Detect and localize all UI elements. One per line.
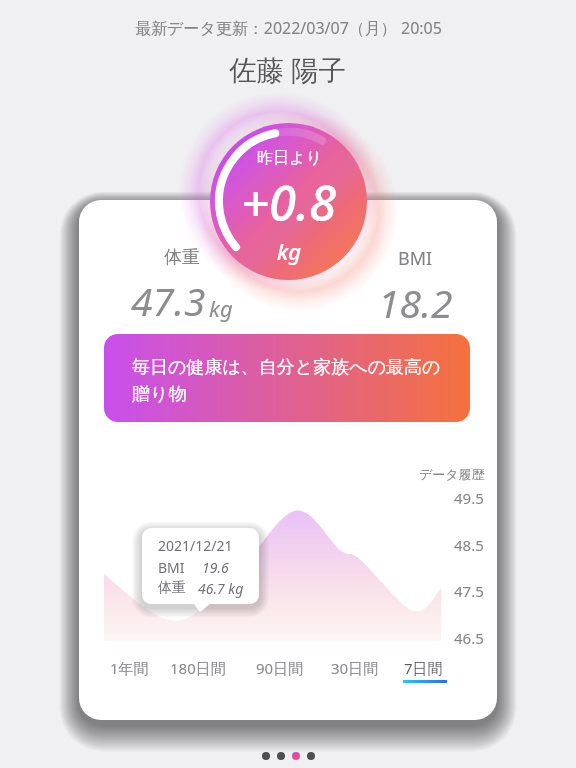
staticText: 佐藤 陽子 [229,51,347,89]
staticText: 180日間 [170,658,226,678]
staticText: 18.2 [378,276,453,329]
button[interactable]: 30日間 [324,652,386,678]
button[interactable]: 昨日より [210,123,367,280]
staticText: 最新データ更新：2022/03/07（月） 20:05 [135,17,442,39]
staticText: 30日間 [331,658,379,678]
staticText: 体重 [164,246,200,269]
button[interactable]: 1年間 [102,652,156,678]
button[interactable]: 180日間 [163,652,233,678]
staticText: 体重 [158,579,186,597]
button[interactable] [277,752,285,760]
staticText: 毎日の健康は、自分と家族への最高の贈り物 [132,356,444,406]
staticText: 46.7 kg [198,579,244,598]
button[interactable]: 7日間 [396,652,450,683]
button[interactable] [307,752,315,760]
staticText: 7日間 [404,658,443,678]
staticText: 昨日より [257,148,322,168]
staticText: データ履歴 [419,466,485,482]
button[interactable] [262,752,270,760]
staticText: 48.5 [454,535,484,555]
staticText: BMI [398,246,433,271]
button[interactable]: 毎日の健康は、自分と家族への最高の贈り物 [104,334,470,422]
staticText: 47.5 [454,581,484,601]
staticText: BMI [158,558,185,577]
staticText: 46.5 [454,628,484,648]
staticText: 2021/12/21 [158,536,233,555]
staticText: 1年間 [110,658,149,678]
staticText: +0.8 [241,169,337,236]
staticText: 49.5 [454,488,484,508]
button[interactable] [292,752,300,760]
staticText: 19.6 [202,558,229,577]
staticText: 90日間 [256,658,304,678]
staticText: kg [277,236,302,266]
staticText: kg [209,293,233,323]
button[interactable]: 90日間 [249,652,311,678]
staticText: 47.3 [131,274,206,327]
